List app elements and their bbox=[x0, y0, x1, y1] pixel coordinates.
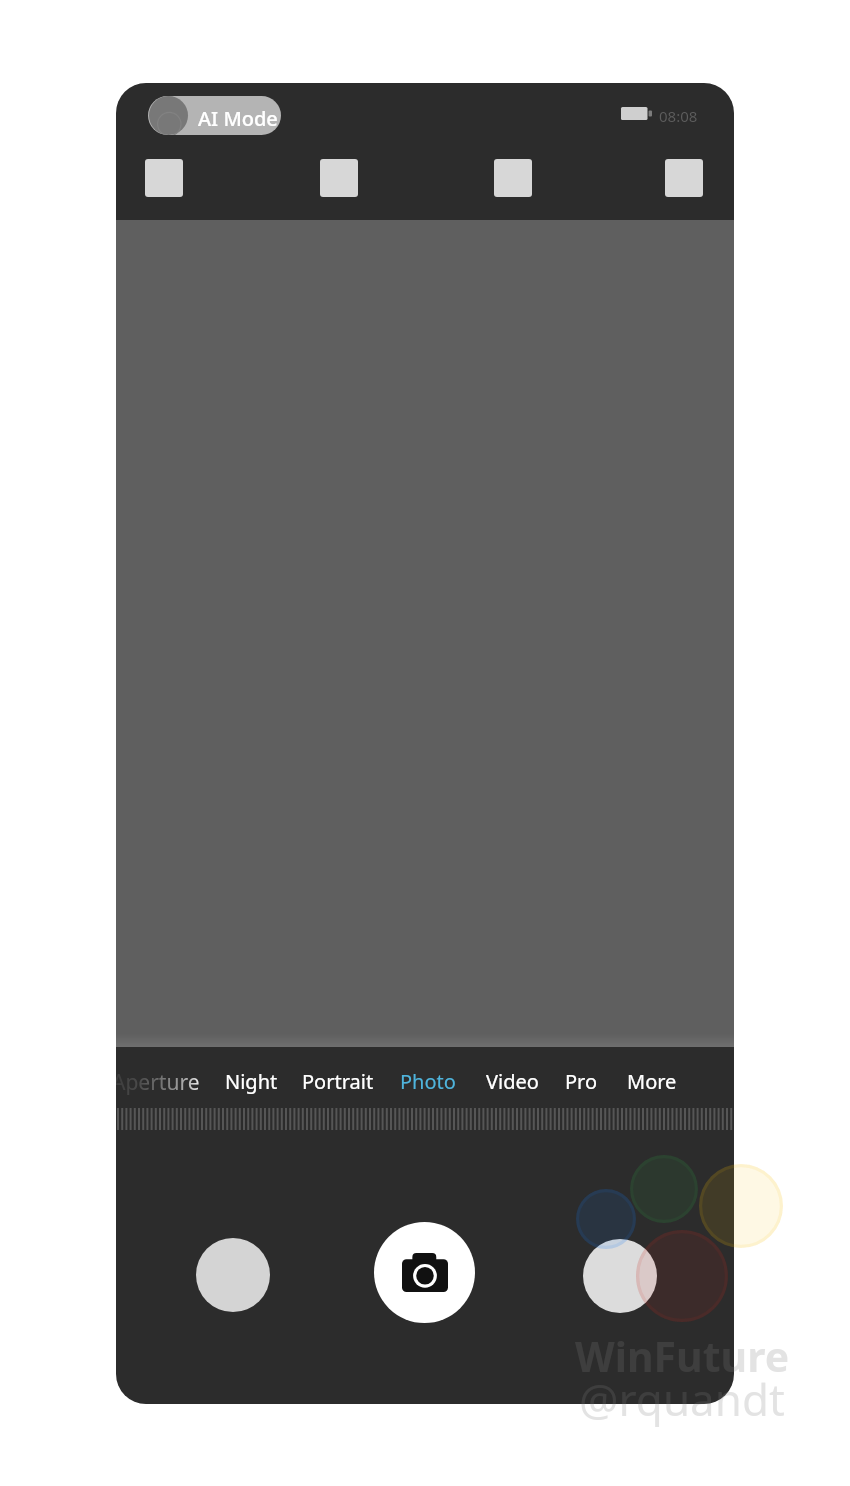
staticText: AI Mode bbox=[198, 105, 278, 132]
button[interactable]: Video bbox=[486, 1068, 539, 1095]
staticText: Photo bbox=[400, 1068, 456, 1095]
button[interactable]: Photo bbox=[400, 1068, 456, 1095]
button[interactable]: Pro bbox=[565, 1068, 598, 1095]
staticText: Video bbox=[486, 1068, 539, 1095]
staticText: More bbox=[627, 1068, 677, 1095]
staticText: Aperture bbox=[116, 1068, 200, 1097]
button[interactable]: Portrait bbox=[302, 1068, 374, 1095]
button[interactable]: Battery and clock bbox=[617, 102, 699, 126]
button[interactable]: Switch camera bbox=[583, 1239, 657, 1313]
staticText: Night bbox=[225, 1068, 278, 1095]
staticText: WinFuture bbox=[575, 1328, 790, 1384]
button[interactable]: Timer bbox=[494, 159, 532, 197]
button[interactable]: HDR bbox=[320, 159, 358, 197]
staticText: Pro bbox=[565, 1068, 598, 1095]
button[interactable]: Night bbox=[225, 1068, 278, 1095]
button[interactable]: Take photo bbox=[374, 1222, 475, 1323]
button[interactable]: Flash bbox=[145, 159, 183, 197]
button[interactable]: Gallery bbox=[196, 1238, 270, 1312]
staticText: @rquandt bbox=[579, 1369, 785, 1429]
button[interactable]: AI Mode bbox=[148, 96, 281, 135]
staticText: Portrait bbox=[302, 1068, 374, 1095]
button[interactable]: Aperture bbox=[116, 1068, 200, 1097]
staticText: 08:08 bbox=[659, 106, 698, 126]
button[interactable]: More bbox=[627, 1068, 677, 1095]
button[interactable]: Settings bbox=[665, 159, 703, 197]
